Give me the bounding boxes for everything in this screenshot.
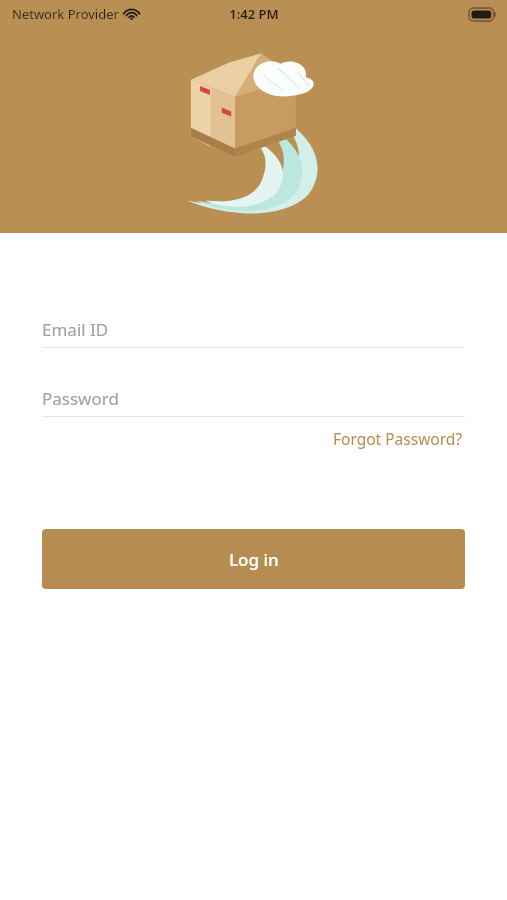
- button[interactable]: Log in: [42, 529, 465, 589]
- other: App logo: [178, 52, 330, 210]
- staticText: 1:42 PM: [229, 5, 279, 23]
- button[interactable]: Password: [42, 380, 465, 417]
- button[interactable]: Email ID: [42, 311, 465, 348]
- button[interactable]: Forgot Password?: [331, 424, 465, 453]
- staticText: Log in: [229, 548, 279, 571]
- staticText: Email ID: [42, 318, 109, 341]
- staticText: Network Provider: [12, 5, 119, 23]
- staticText: Password: [42, 387, 119, 410]
- staticText: Forgot Password?: [333, 428, 463, 449]
